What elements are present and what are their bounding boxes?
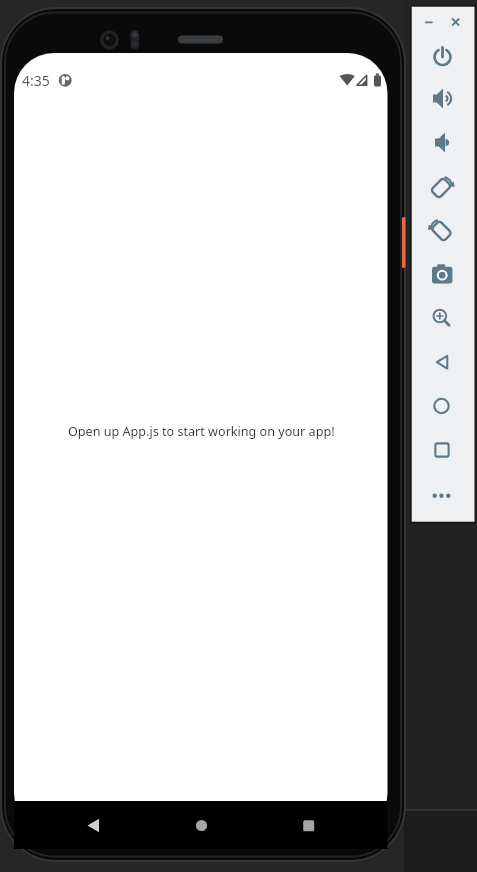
- button[interactable]: [426, 434, 458, 466]
- staticText: 4:35: [22, 71, 50, 90]
- button[interactable]: [426, 171, 458, 203]
- staticText: Open up App.js to start working on your …: [68, 423, 335, 440]
- button[interactable]: [426, 346, 458, 378]
- button[interactable]: [426, 258, 458, 290]
- button[interactable]: [426, 480, 458, 512]
- button[interactable]: [426, 126, 458, 158]
- button[interactable]: [426, 390, 458, 422]
- button[interactable]: [426, 300, 458, 332]
- button[interactable]: [171, 802, 231, 848]
- button[interactable]: [446, 13, 465, 32]
- button[interactable]: [426, 215, 458, 247]
- button[interactable]: [426, 82, 458, 114]
- button[interactable]: [277, 802, 337, 848]
- button[interactable]: [419, 13, 438, 32]
- button[interactable]: [426, 40, 458, 72]
- button[interactable]: [63, 802, 123, 848]
